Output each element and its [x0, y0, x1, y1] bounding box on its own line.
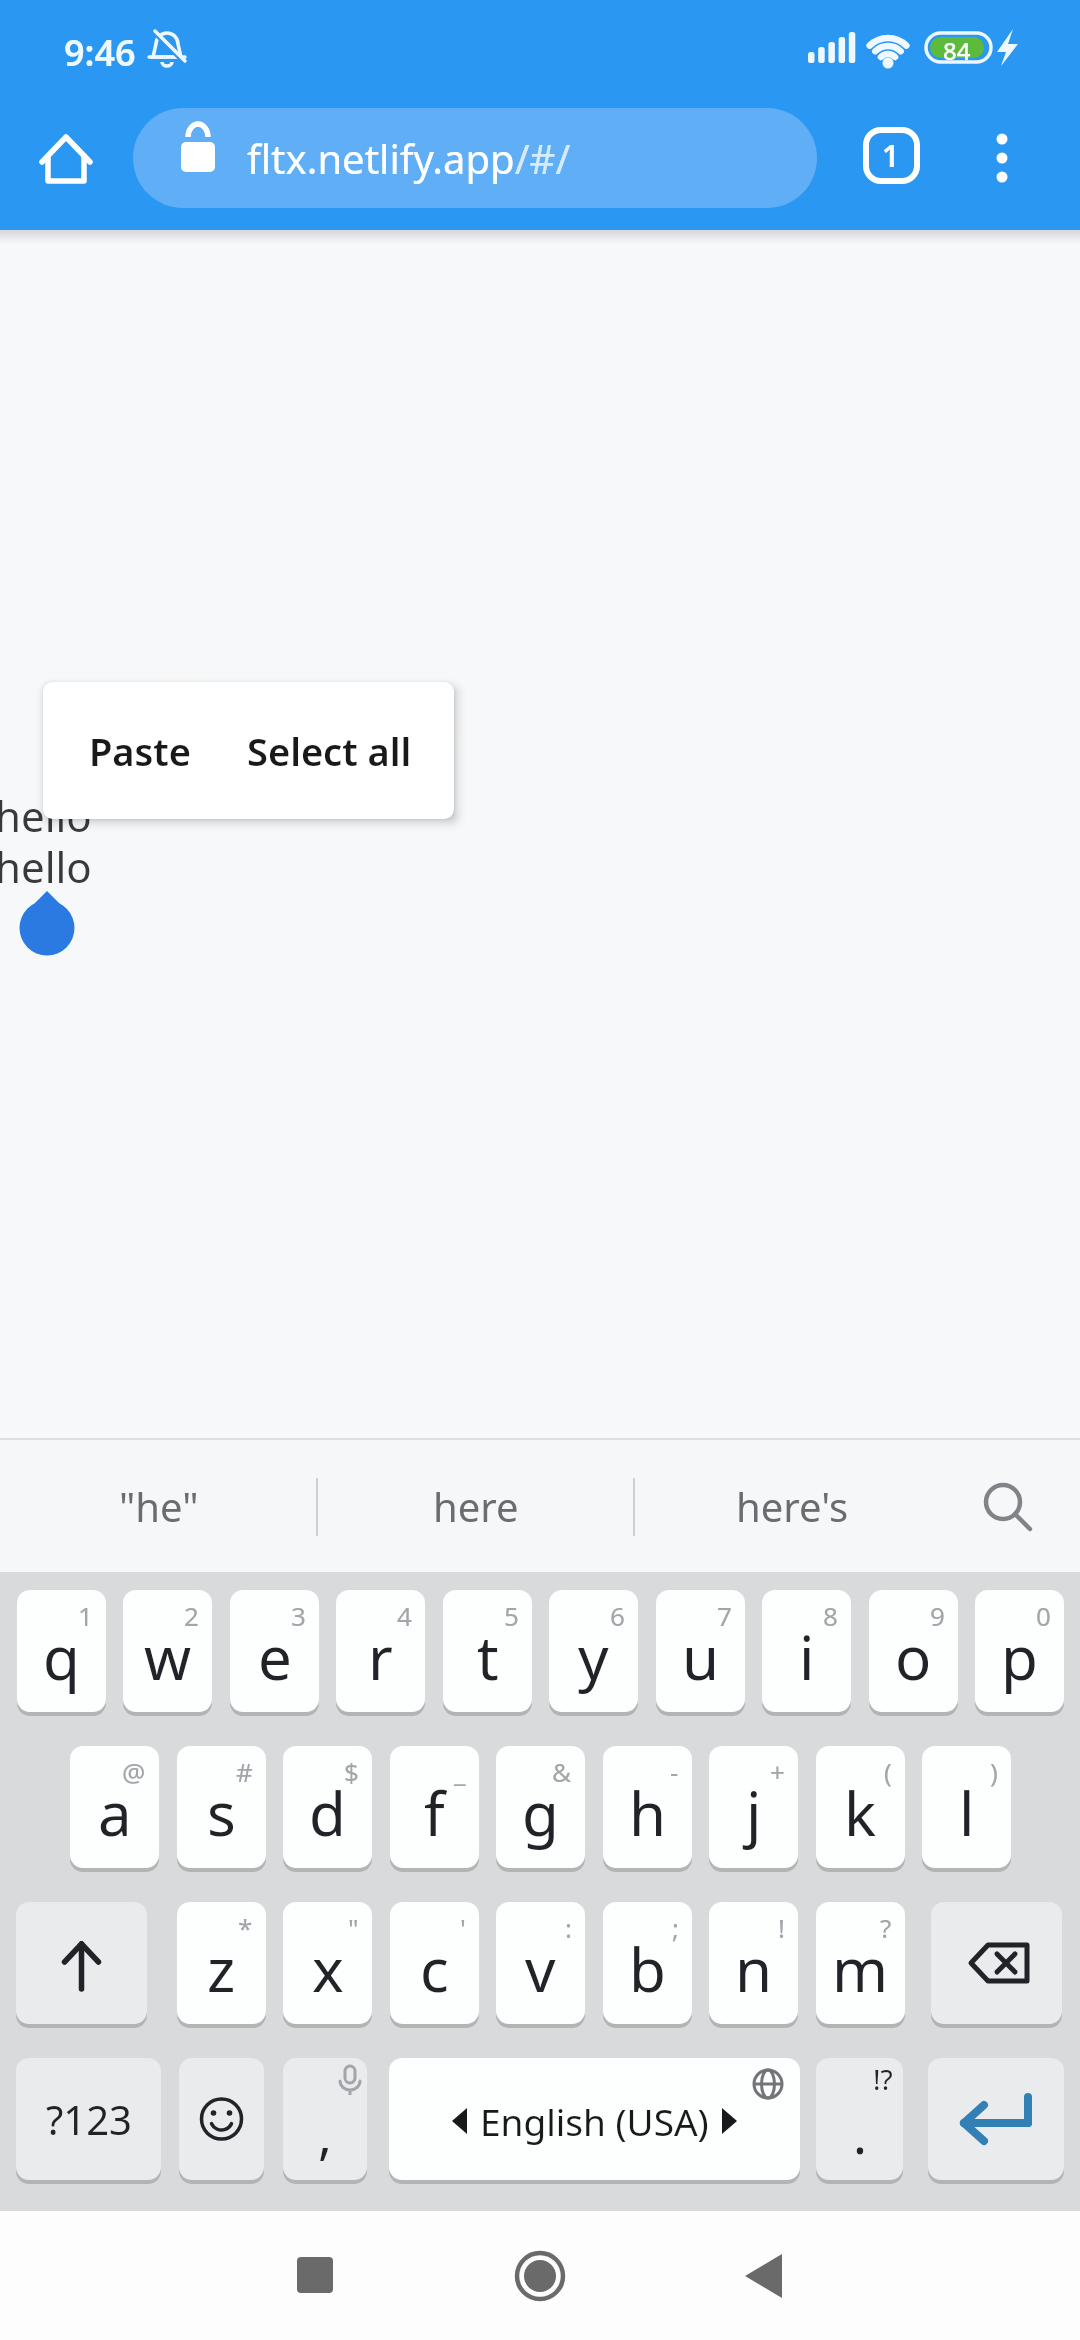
button[interactable] [705, 2231, 825, 2331]
staticText: p [1001, 1616, 1038, 1698]
staticText: ! [778, 1910, 785, 1945]
button[interactable]: here [317, 1440, 634, 1572]
button[interactable] [16, 1902, 147, 2028]
staticText: r [368, 1616, 393, 1698]
button[interactable]: "he" [0, 1440, 317, 1572]
button[interactable]: c [390, 1902, 479, 2028]
button[interactable] [928, 2058, 1064, 2184]
staticText: : [565, 1910, 572, 1945]
staticText: h [629, 1772, 667, 1854]
staticText: a [98, 1772, 132, 1854]
staticText: here [433, 1479, 519, 1533]
staticText: here's [736, 1479, 849, 1533]
button[interactable] [22, 120, 110, 208]
button[interactable]: here's [634, 1440, 951, 1572]
staticText: 9:46 [64, 28, 136, 77]
button[interactable]: n [709, 1902, 798, 2028]
staticText: e [258, 1616, 292, 1698]
button[interactable]: f [390, 1746, 479, 1872]
staticText: 8 [823, 1598, 838, 1633]
button[interactable]: u [656, 1590, 745, 1716]
staticText: c [420, 1928, 449, 2010]
staticText: x [312, 1928, 344, 2010]
staticText: i [799, 1616, 815, 1698]
staticText: g [522, 1772, 559, 1854]
button[interactable]: d [283, 1746, 372, 1872]
staticText: 84 [943, 34, 971, 67]
button[interactable]: y [549, 1590, 638, 1716]
button[interactable]: k [816, 1746, 905, 1872]
button[interactable]: j [709, 1746, 798, 1872]
button[interactable]: e [230, 1590, 319, 1716]
staticText: 1 [78, 1598, 93, 1633]
staticText: Paste [89, 725, 191, 777]
button[interactable] [931, 1902, 1062, 2028]
staticText: . [853, 2098, 867, 2169]
button[interactable] [480, 2231, 600, 2331]
staticText: w [144, 1616, 192, 1698]
staticText: @ [122, 1754, 146, 1789]
button[interactable]: g [496, 1746, 585, 1872]
staticText: * [238, 1910, 253, 1945]
staticText: hello [0, 838, 92, 895]
staticText: 2 [184, 1598, 199, 1633]
button[interactable]: h [603, 1746, 692, 1872]
button[interactable]: b [603, 1902, 692, 2028]
staticText: v [525, 1928, 556, 2010]
staticText: & [552, 1754, 572, 1789]
staticText: n [735, 1928, 773, 2010]
button[interactable]: m [816, 1902, 905, 2028]
staticText: ; [672, 1910, 679, 1945]
staticText: "he" [119, 1479, 199, 1533]
button[interactable]: ?123 [16, 2058, 161, 2184]
button[interactable]: o [869, 1590, 958, 1716]
staticText: English (USA) [480, 2096, 709, 2146]
staticText: 6 [610, 1598, 625, 1633]
staticText: hello [0, 787, 92, 844]
staticText: d [309, 1772, 346, 1854]
staticText: 9 [930, 1598, 945, 1633]
button[interactable]: r [336, 1590, 425, 1716]
button[interactable]: v [496, 1902, 585, 2028]
button[interactable] [179, 2058, 264, 2184]
button[interactable]: , [283, 2058, 367, 2184]
staticText: b [629, 1928, 666, 2010]
staticText: ?123 [46, 2092, 132, 2146]
button[interactable] [960, 110, 1044, 194]
staticText: 0 [1036, 1598, 1051, 1633]
button[interactable]: z [177, 1902, 266, 2028]
button[interactable]: t [443, 1590, 532, 1716]
button[interactable]: Paste [50, 682, 230, 819]
button[interactable] [951, 1440, 1080, 1572]
button[interactable]: fltx.netlify.app/#/ [133, 108, 817, 208]
staticText: q [43, 1616, 80, 1698]
staticText: fltx.netlify.app/#/ [247, 131, 571, 185]
button[interactable]: !? [816, 2058, 903, 2184]
button[interactable]: a [70, 1746, 159, 1872]
staticText: y [578, 1616, 609, 1698]
staticText: " [348, 1910, 359, 1945]
staticText: m [832, 1928, 889, 2010]
button[interactable]: i [762, 1590, 851, 1716]
staticText: $ [344, 1754, 359, 1789]
staticText: s [207, 1772, 236, 1854]
staticText: _ [454, 1754, 466, 1789]
button[interactable]: l [922, 1746, 1011, 1872]
staticText: f [424, 1772, 445, 1854]
staticText: !? [873, 2060, 893, 2098]
button[interactable]: q [17, 1590, 106, 1716]
button[interactable]: p [975, 1590, 1064, 1716]
button[interactable]: English (USA) [389, 2058, 800, 2184]
staticText: j [746, 1772, 762, 1854]
button[interactable]: 1 [846, 110, 936, 200]
staticText: ' [460, 1910, 466, 1945]
button[interactable]: x [283, 1902, 372, 2028]
button[interactable]: Select all [239, 682, 420, 819]
button[interactable] [255, 2231, 375, 2331]
staticText: ( [884, 1754, 892, 1789]
button[interactable]: w [123, 1590, 212, 1716]
button[interactable]: s [177, 1746, 266, 1872]
staticText: l [959, 1772, 975, 1854]
staticText: 7 [717, 1598, 732, 1633]
staticText: Select all [247, 725, 412, 777]
